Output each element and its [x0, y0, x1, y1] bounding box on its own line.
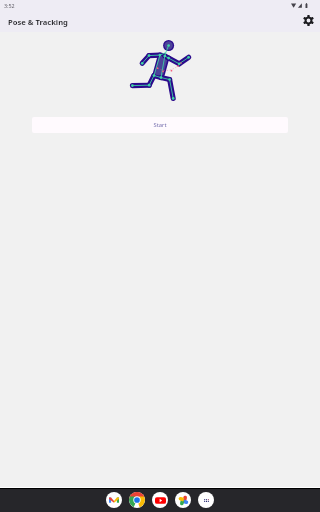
- button[interactable]: Chrome: [129, 492, 145, 508]
- button[interactable]: All apps: [198, 492, 214, 508]
- button[interactable]: YouTube: [152, 492, 168, 508]
- staticText: Start: [153, 121, 167, 129]
- button[interactable]: Gmail: [106, 492, 122, 508]
- button[interactable]: Settings: [300, 12, 317, 29]
- staticText: 3:52: [4, 2, 15, 9]
- button[interactable]: Start: [32, 117, 288, 133]
- button[interactable]: Google Photos: [175, 492, 191, 508]
- staticText: Pose & Tracking: [8, 17, 68, 27]
